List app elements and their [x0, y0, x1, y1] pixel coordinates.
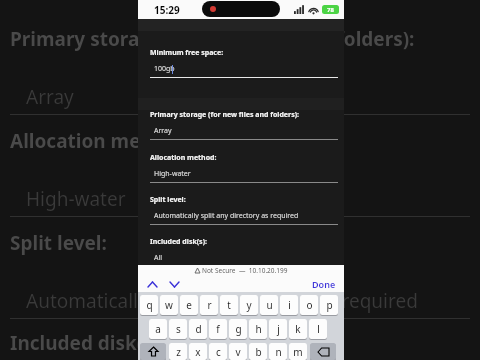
button[interactable]: j [269, 319, 287, 339]
staticText: u [266, 298, 273, 312]
staticText: c [216, 345, 221, 359]
button[interactable]: a [149, 319, 167, 339]
button[interactable]: v [229, 343, 247, 360]
button[interactable]: g [229, 319, 247, 339]
button[interactable]: Included disk(s): [138, 237, 344, 267]
staticText: b [255, 345, 262, 359]
staticText: s [176, 322, 181, 336]
staticText: High-water [26, 186, 126, 212]
button[interactable]: n [269, 343, 287, 360]
button[interactable]: Shift [140, 343, 166, 360]
staticText: y [246, 298, 252, 312]
staticText: l [317, 322, 320, 336]
staticText: Allocation method: [150, 153, 217, 163]
staticText: Done [312, 278, 336, 290]
staticText: n [275, 345, 282, 359]
button[interactable]: u [260, 295, 278, 315]
staticText: v [235, 345, 241, 359]
staticText: d [195, 322, 202, 336]
staticText: Allocation method: [10, 128, 191, 154]
button[interactable]: Allocation method: [138, 153, 344, 183]
button[interactable]: o [300, 295, 318, 315]
button[interactable]: p [320, 295, 338, 315]
staticText: r [207, 298, 212, 312]
staticText: Split level: [10, 230, 107, 256]
staticText: w [165, 298, 173, 312]
button[interactable]: f [209, 319, 227, 339]
staticText: 100gb [154, 64, 175, 74]
staticText: Primary storage (for new files and folde… [10, 26, 415, 52]
staticText: Automatically split any directory as req… [26, 288, 418, 314]
button[interactable]: i [280, 295, 298, 315]
button[interactable]: Split level: [138, 195, 344, 225]
button[interactable]: h [249, 319, 267, 339]
staticText: k [295, 322, 301, 336]
button[interactable]: m [289, 343, 307, 360]
staticText: Primary storage (for new files and folde… [150, 110, 300, 120]
staticText: Minimum free space: [150, 48, 224, 58]
button[interactable]: w [160, 295, 178, 315]
button[interactable]: x [189, 343, 207, 360]
staticText: q [146, 298, 153, 312]
button[interactable]: q [140, 295, 158, 315]
staticText: Automatically split any directory as req… [154, 211, 299, 221]
staticText: 78 [327, 6, 334, 14]
staticText: e [186, 298, 192, 312]
staticText: o [306, 298, 313, 312]
button[interactable]: y [240, 295, 258, 315]
button[interactable]: d [189, 319, 207, 339]
button[interactable]: Backspace [310, 343, 336, 360]
staticText: Not Secure — 10.10.20.199 [202, 266, 288, 275]
staticText: High-water [154, 169, 191, 179]
staticText: Split level: [150, 195, 186, 205]
staticText: Included disk(s): [150, 237, 207, 247]
button[interactable]: r [200, 295, 218, 315]
staticText: f [216, 322, 220, 336]
button[interactable]: k [289, 319, 307, 339]
staticText: Array [154, 126, 172, 136]
staticText: i [288, 298, 291, 312]
button[interactable]: Done [304, 276, 344, 292]
staticText: a [155, 322, 161, 336]
button[interactable]: z [169, 343, 187, 360]
staticText: 15:29 [154, 3, 180, 17]
button[interactable]: Previous field [146, 278, 159, 291]
button[interactable]: c [209, 343, 227, 360]
staticText: p [326, 298, 333, 312]
staticText: All [154, 253, 163, 263]
staticText: Included disk(s): [10, 330, 165, 356]
staticText: h [255, 322, 262, 336]
staticText: j [277, 322, 280, 336]
button[interactable]: e [180, 295, 198, 315]
button[interactable]: s [169, 319, 187, 339]
button[interactable]: l [309, 319, 327, 339]
button[interactable]: Primary storage (for new files and folde… [138, 110, 344, 140]
button[interactable]: t [220, 295, 238, 315]
staticText: z [176, 345, 181, 359]
staticText: Array [26, 84, 74, 110]
button[interactable]: Minimum free space: [138, 48, 344, 78]
staticText: x [195, 345, 201, 359]
staticText: t [227, 298, 231, 312]
staticText: m [293, 345, 303, 359]
button[interactable]: Next field [168, 278, 181, 291]
button[interactable]: b [249, 343, 267, 360]
staticText: g [235, 322, 242, 336]
